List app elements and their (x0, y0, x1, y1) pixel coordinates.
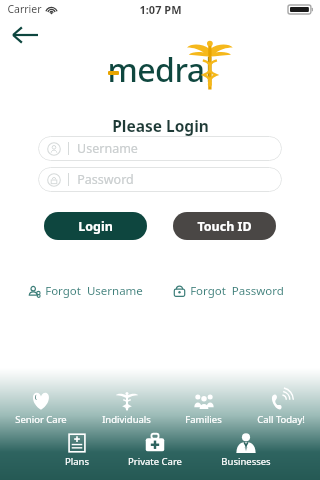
staticText: Families (185, 413, 222, 426)
staticText: Call Today! (257, 413, 305, 426)
button[interactable]: Families (182, 390, 225, 426)
button[interactable]: Individuals (99, 390, 154, 426)
staticText: Password (77, 171, 134, 188)
staticText: Forgot Password (190, 283, 284, 299)
staticText: Businesses (221, 455, 271, 468)
button[interactable]: Call Today! (254, 390, 308, 426)
button[interactable]: Username (38, 136, 282, 161)
button[interactable]: Private Care (125, 432, 185, 468)
staticText: Touch ID (197, 218, 252, 235)
staticText: Private Care (128, 455, 182, 468)
staticText: Plans (65, 455, 89, 468)
button[interactable]: Plans (62, 432, 92, 468)
staticText: Individuals (102, 413, 151, 426)
staticText: Username (77, 140, 138, 157)
button[interactable]: Back (6, 20, 50, 50)
button[interactable]: Businesses (218, 432, 274, 468)
button[interactable]: Password (38, 167, 282, 192)
staticText: Forgot Username (45, 283, 143, 299)
button[interactable]: Forgot Username (26, 280, 145, 302)
staticText: Please Login (112, 115, 209, 136)
staticText: Senior Care (15, 413, 67, 426)
staticText: l (205, 48, 214, 92)
button[interactable]: Senior Care (12, 390, 70, 426)
staticText: Carrier (7, 2, 42, 16)
button[interactable]: Forgot Password (171, 280, 286, 302)
staticText: 1:07 PM (139, 2, 182, 17)
button[interactable]: Login (44, 212, 147, 240)
button[interactable]: Touch ID (173, 212, 276, 240)
staticText: Login (78, 218, 113, 235)
staticText: medra (107, 48, 205, 92)
